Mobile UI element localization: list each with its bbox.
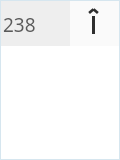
button[interactable]: 238	[0, 0, 70, 46]
staticText: 238	[3, 12, 36, 38]
button[interactable]: Scroll to top	[70, 0, 120, 46]
